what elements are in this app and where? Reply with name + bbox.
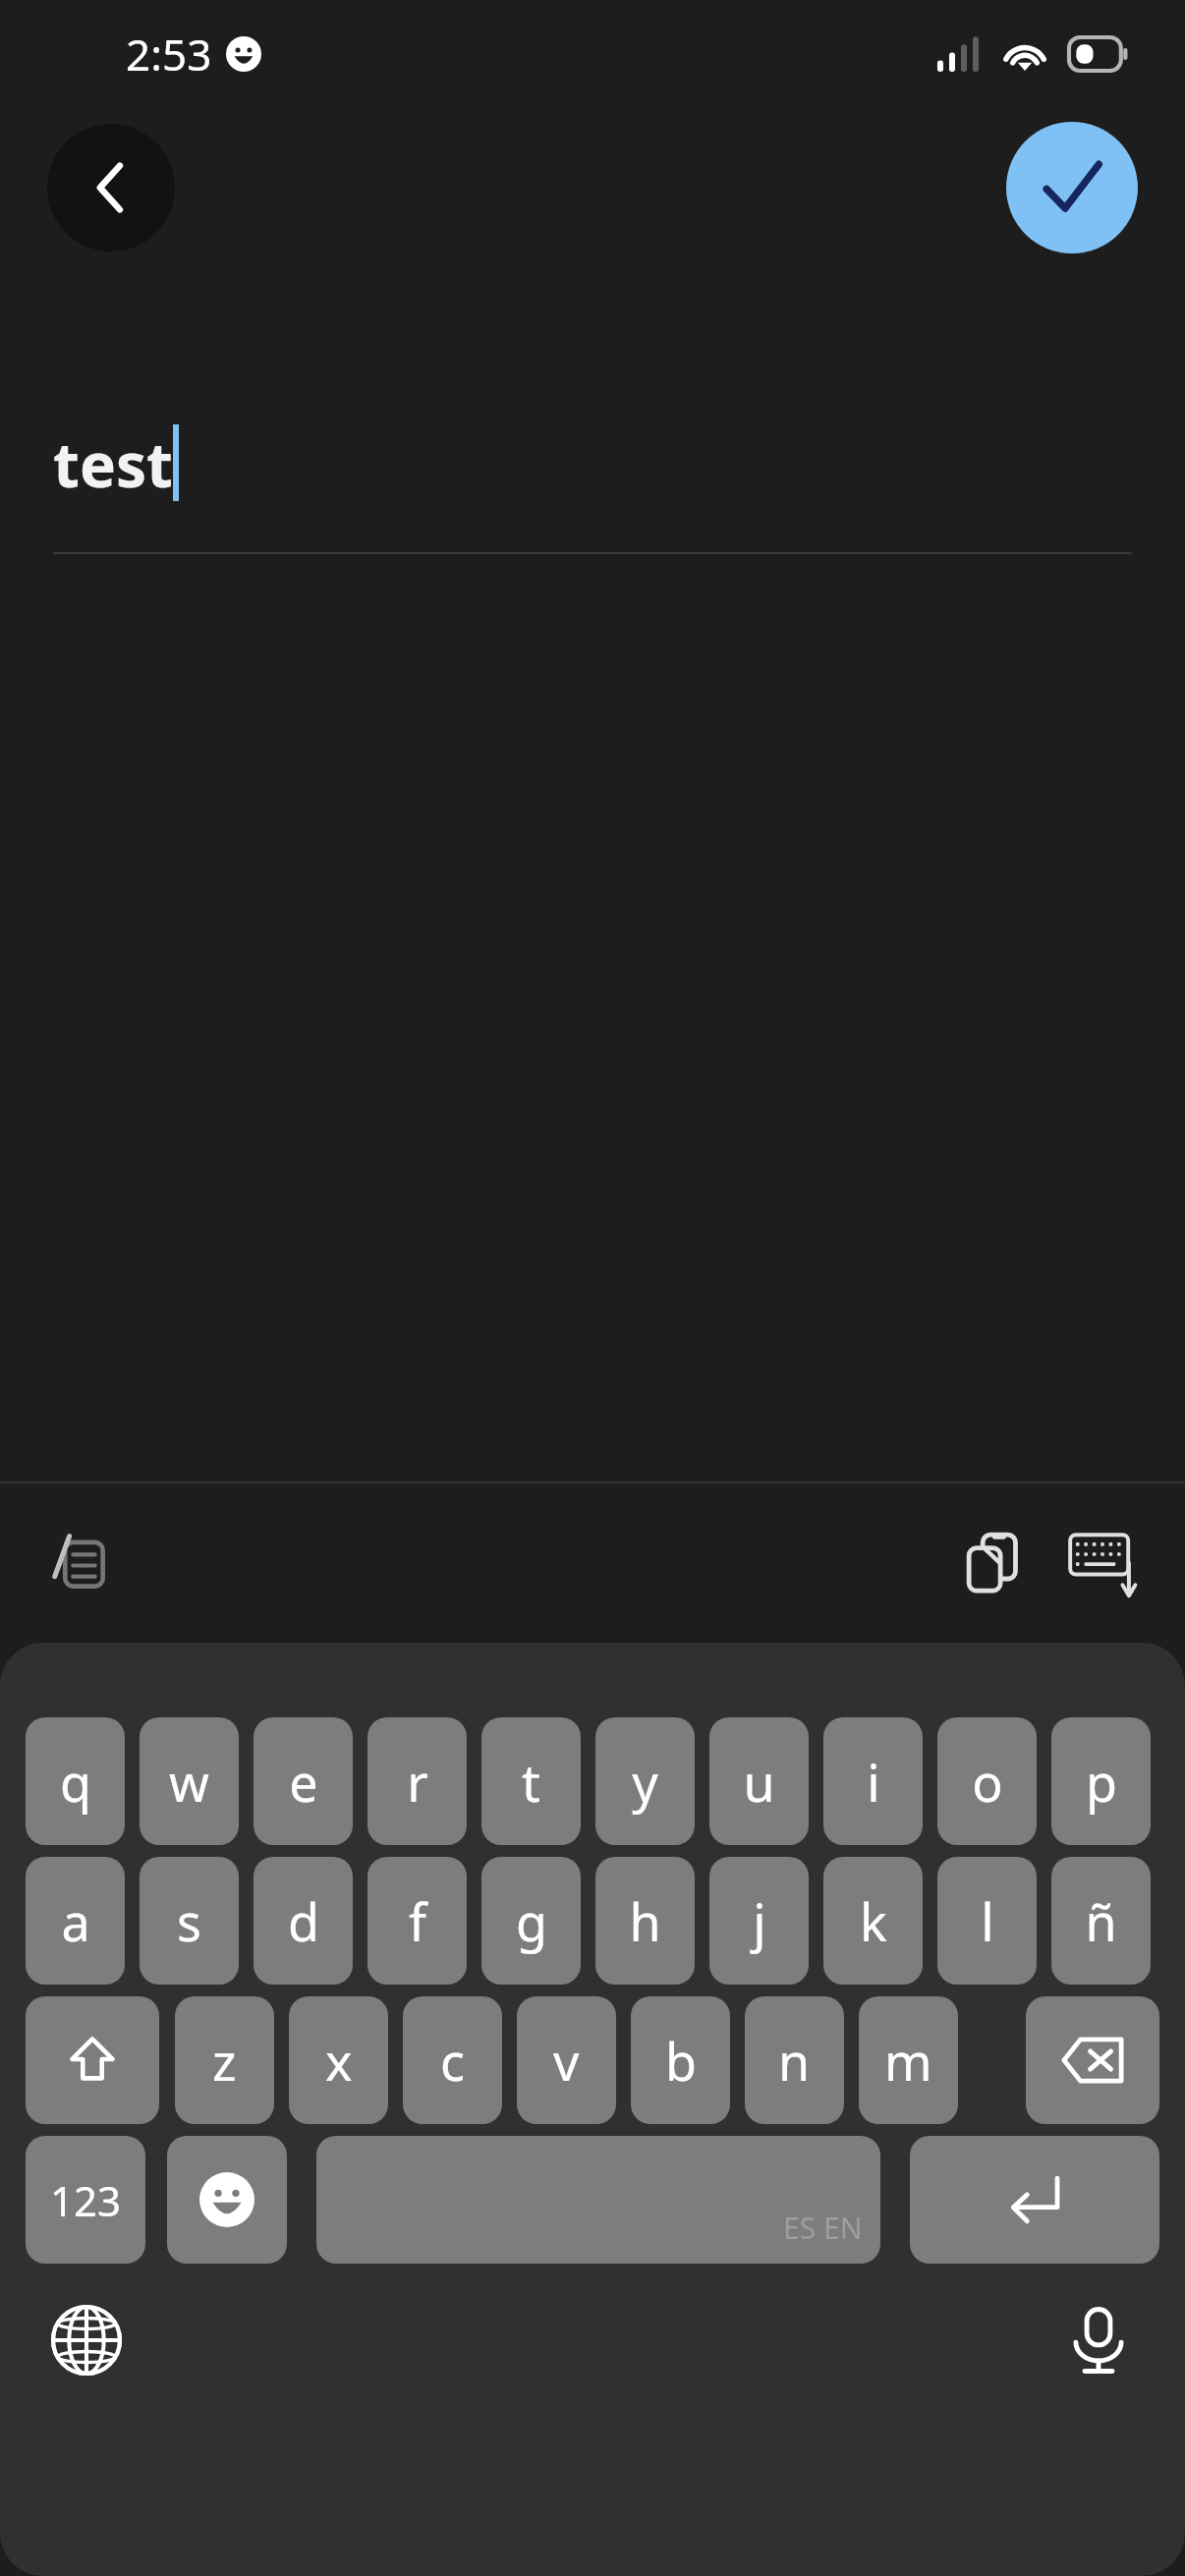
staticText: d [288, 1886, 319, 1956]
button[interactable]: f [367, 1857, 467, 1985]
button[interactable]: a [26, 1857, 125, 1985]
staticText: 2:53 [126, 25, 212, 84]
button[interactable]: x [289, 1996, 388, 2124]
staticText: p [1086, 1747, 1117, 1817]
button[interactable]: y [595, 1717, 695, 1845]
button[interactable]: h [595, 1857, 695, 1985]
button[interactable]: q [26, 1717, 125, 1845]
staticText: 123 [50, 2172, 122, 2228]
button[interactable]: j [709, 1857, 809, 1985]
button[interactable]: w [140, 1717, 239, 1845]
button[interactable]: Backspace [1026, 1996, 1159, 2124]
button[interactable]: o [937, 1717, 1037, 1845]
staticText: z [212, 2026, 237, 2096]
button[interactable]: m [859, 1996, 958, 2124]
button[interactable]: Notes [28, 1509, 136, 1617]
button[interactable]: s [140, 1857, 239, 1985]
staticText: q [60, 1747, 91, 1817]
button[interactable]: i [823, 1717, 923, 1845]
staticText: f [409, 1886, 426, 1956]
button[interactable]: Hide keyboard [1049, 1509, 1157, 1617]
button[interactable]: b [631, 1996, 730, 2124]
staticText: test [53, 422, 173, 505]
button[interactable]: n [745, 1996, 844, 2124]
button[interactable]: u [709, 1717, 809, 1845]
staticText: h [629, 1886, 661, 1956]
button[interactable]: r [367, 1717, 467, 1845]
staticText: a [61, 1886, 90, 1956]
button[interactable]: Save note [1006, 122, 1138, 253]
button[interactable]: Enter [910, 2136, 1159, 2264]
button[interactable]: Space [316, 2136, 880, 2264]
button[interactable]: ñ [1051, 1857, 1151, 1985]
button[interactable]: Clipboard [941, 1509, 1049, 1617]
staticText: ES EN [783, 2208, 863, 2248]
button[interactable]: e [254, 1717, 353, 1845]
button[interactable]: Emoji [167, 2136, 287, 2264]
button[interactable]: test [53, 422, 1132, 505]
button[interactable]: k [823, 1857, 923, 1985]
button[interactable]: l [937, 1857, 1037, 1985]
staticText: ñ [1085, 1886, 1117, 1956]
button[interactable]: Shift [26, 1996, 159, 2124]
staticText: c [440, 2026, 465, 2096]
button[interactable]: v [517, 1996, 616, 2124]
staticText: w [169, 1747, 209, 1817]
staticText: g [516, 1886, 547, 1956]
staticText: s [177, 1886, 201, 1956]
staticText: t [522, 1747, 540, 1817]
button[interactable]: c [403, 1996, 502, 2124]
staticText: b [665, 2026, 697, 2096]
button[interactable]: 123 [26, 2136, 145, 2264]
staticText: x [325, 2026, 353, 2096]
staticText: j [753, 1886, 766, 1956]
staticText: v [553, 2026, 580, 2096]
button[interactable]: p [1051, 1717, 1151, 1845]
button[interactable]: t [481, 1717, 581, 1845]
button[interactable]: Change language [28, 2281, 145, 2399]
staticText: o [972, 1747, 1003, 1817]
staticText: r [407, 1747, 428, 1817]
button[interactable]: Back [47, 124, 175, 252]
staticText: n [778, 2026, 811, 2096]
staticText: y [632, 1747, 658, 1817]
button[interactable]: z [175, 1996, 274, 2124]
staticText: l [981, 1886, 994, 1956]
staticText: i [867, 1747, 880, 1817]
button[interactable]: d [254, 1857, 353, 1985]
staticText: e [289, 1747, 318, 1817]
button[interactable]: Voice input [1040, 2281, 1157, 2399]
staticText: m [884, 2026, 932, 2096]
staticText: u [743, 1747, 775, 1817]
staticText: k [860, 1886, 887, 1956]
button[interactable]: g [481, 1857, 581, 1985]
